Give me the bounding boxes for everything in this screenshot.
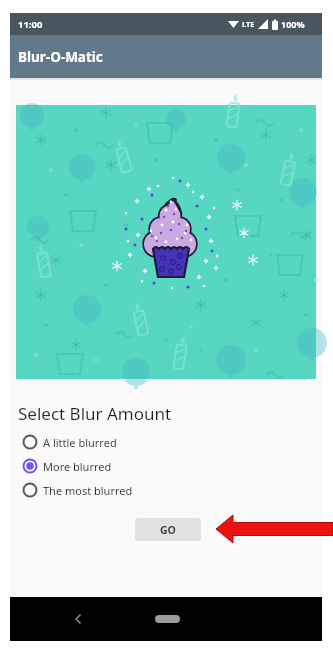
staticText: The most blurred (43, 483, 133, 498)
staticText: LTE (242, 19, 255, 29)
button[interactable]: The most blurred (10, 478, 322, 502)
button[interactable]: GO (135, 518, 201, 541)
button[interactable]: More blurred (10, 454, 322, 478)
staticText: 100% (281, 18, 305, 30)
button[interactable]: A little blurred (10, 430, 322, 454)
staticText: Select Blur Amount (18, 402, 172, 425)
staticText: Blur-O-Matic (18, 48, 103, 66)
staticText: 11:00 (18, 18, 43, 31)
staticText: GO (160, 523, 176, 537)
staticText: More blurred (43, 459, 112, 474)
button[interactable] (10, 597, 322, 641)
staticText: A little blurred (43, 435, 117, 450)
